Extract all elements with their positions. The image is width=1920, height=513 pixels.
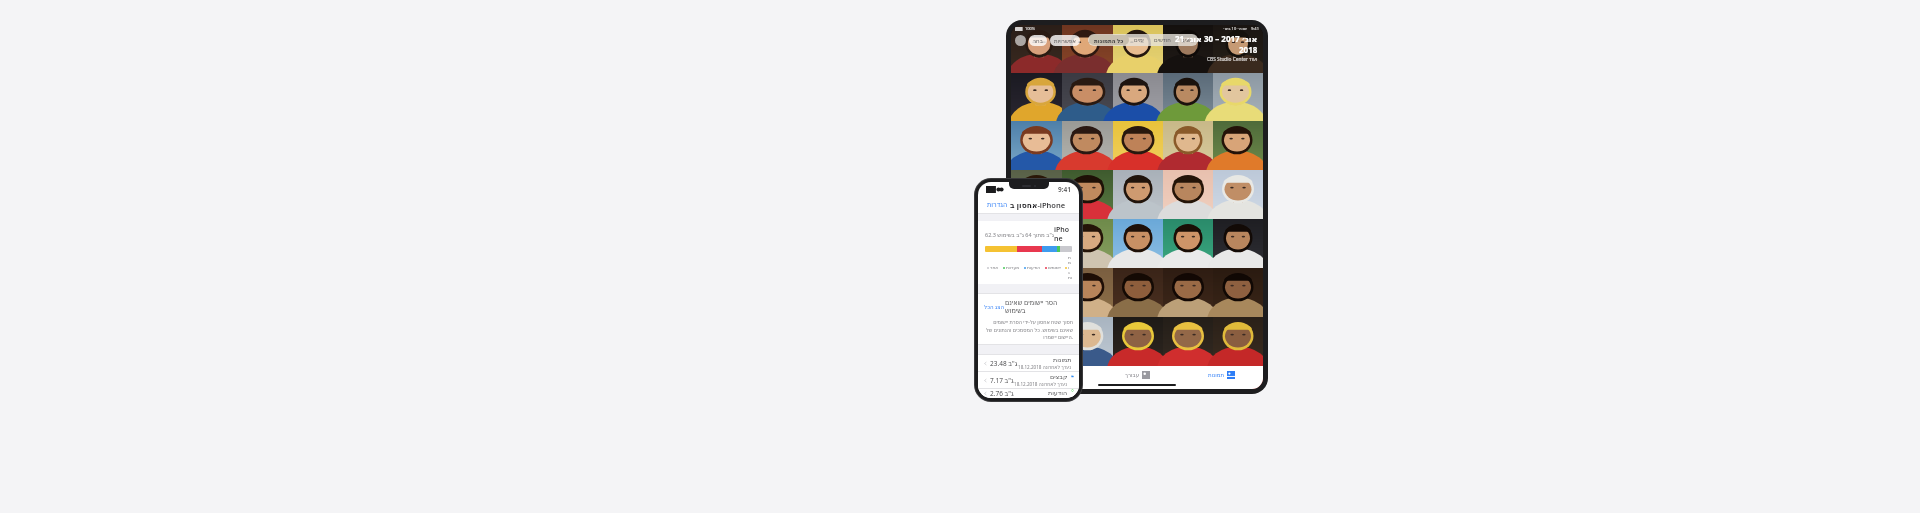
button[interactable] — [1062, 268, 1113, 317]
staticText: יישומים — [1048, 265, 1061, 270]
button[interactable] — [1163, 317, 1213, 366]
button[interactable]: אפשרויות — [1050, 35, 1080, 46]
button[interactable] — [1213, 268, 1263, 317]
button[interactable] — [1163, 121, 1213, 170]
button[interactable] — [1011, 219, 1062, 268]
button[interactable] — [1011, 25, 1062, 73]
button[interactable] — [1011, 268, 1062, 317]
button[interactable] — [1011, 170, 1062, 219]
staticText: תמונות — [1053, 356, 1072, 363]
button[interactable] — [1062, 170, 1113, 219]
staticText: ימים — [1134, 37, 1144, 43]
staticText: יום ה׳ 10 בינו׳ — [1223, 26, 1248, 31]
staticText: הסר יישומים שאינם בשימוש — [1005, 298, 1073, 315]
button[interactable] — [1011, 317, 1062, 366]
button[interactable] — [1113, 268, 1163, 317]
button[interactable] — [1163, 25, 1213, 73]
button[interactable]: 2.76 ג"ב — [978, 389, 1079, 398]
button[interactable]: בחר — [1029, 35, 1047, 46]
button[interactable] — [1213, 219, 1263, 268]
button[interactable]: ימים — [1129, 35, 1149, 45]
staticText: נערך לאחרונה 18.12.2018 — [1014, 381, 1068, 387]
button[interactable] — [1213, 73, 1263, 121]
button[interactable] — [1213, 170, 1263, 219]
button[interactable] — [1062, 317, 1113, 366]
staticText: 21 אוג׳ 2017 – 30 אוג׳ — [1175, 33, 1258, 44]
button[interactable]: תמונות — [1179, 371, 1263, 379]
button[interactable] — [1113, 317, 1163, 366]
button[interactable] — [1011, 121, 1062, 170]
staticText: מערכת — [1006, 265, 1020, 270]
staticText: 7.17 ג"ב — [990, 376, 1014, 385]
button[interactable] — [1213, 25, 1263, 73]
button[interactable]: הגדרות — [985, 199, 1010, 211]
button[interactable] — [1113, 121, 1163, 170]
staticText: חודשים — [1154, 37, 1171, 43]
staticText: חסוך שטח אחסון על-ידי הסרת יישומים שאינם… — [984, 319, 1073, 340]
button[interactable]: אלבומים — [1011, 371, 1095, 379]
staticText: אחר — [990, 265, 999, 270]
button[interactable] — [1163, 170, 1213, 219]
button[interactable] — [1113, 170, 1163, 219]
staticText: אפשרויות — [1054, 38, 1076, 44]
button[interactable] — [1113, 219, 1163, 268]
button[interactable] — [1062, 121, 1113, 170]
staticText: הגדרות — [987, 201, 1008, 209]
button[interactable]: חודשים — [1149, 35, 1176, 45]
staticText: 9:41 — [1058, 185, 1071, 194]
button[interactable] — [1062, 25, 1113, 73]
button[interactable]: 7.17 ג"ב — [978, 372, 1079, 388]
staticText: 23.48 ג"ב — [990, 359, 1018, 368]
button[interactable] — [1062, 219, 1113, 268]
staticText: CBS Studio Center ועוד — [1207, 56, 1258, 63]
button[interactable] — [1213, 121, 1263, 170]
staticText: 9:41 — [1251, 26, 1259, 31]
staticText: 62.3 ג"ב מתוך 64 ג"ב בשימוש — [985, 231, 1054, 238]
staticText: הצג הכל — [984, 303, 1005, 310]
staticText: עבורך — [1125, 372, 1140, 378]
button[interactable] — [1163, 219, 1213, 268]
staticText: קבצים — [1050, 373, 1068, 380]
staticText: הודעות — [1027, 265, 1041, 270]
staticText: אחסון ב-iPhone — [1010, 200, 1066, 210]
staticText: 2.76 ג"ב — [990, 389, 1014, 398]
button[interactable] — [1011, 73, 1062, 121]
button[interactable]: עבורך — [1095, 371, 1179, 379]
staticText: בחר — [1033, 38, 1043, 44]
button[interactable]: Select — [1015, 35, 1026, 46]
button[interactable]: שנים — [1176, 35, 1197, 45]
button[interactable]: 23.48 ג"ב — [978, 355, 1079, 371]
staticText: 100% — [1025, 26, 1036, 31]
staticText: נערך לאחרונה 18.12.2018 — [1018, 364, 1072, 370]
button[interactable] — [1062, 73, 1113, 121]
button[interactable]: כל התמונות — [1089, 35, 1129, 45]
staticText: תמונות — [1068, 255, 1070, 280]
staticText: הודעות — [1048, 389, 1068, 396]
button[interactable] — [1163, 268, 1213, 317]
button[interactable] — [1213, 317, 1263, 366]
staticText: 2018 — [1239, 44, 1258, 55]
staticText: אלבומים — [1038, 372, 1059, 378]
button[interactable] — [1163, 73, 1213, 121]
button[interactable]: הצג הכל — [978, 294, 1079, 319]
staticText: שנים — [1181, 37, 1192, 43]
button[interactable] — [1113, 25, 1163, 73]
staticText: תמונות — [1208, 372, 1225, 378]
staticText: iPhone — [1054, 225, 1072, 243]
button[interactable] — [1113, 73, 1163, 121]
staticText: כל התמונות — [1094, 37, 1124, 44]
